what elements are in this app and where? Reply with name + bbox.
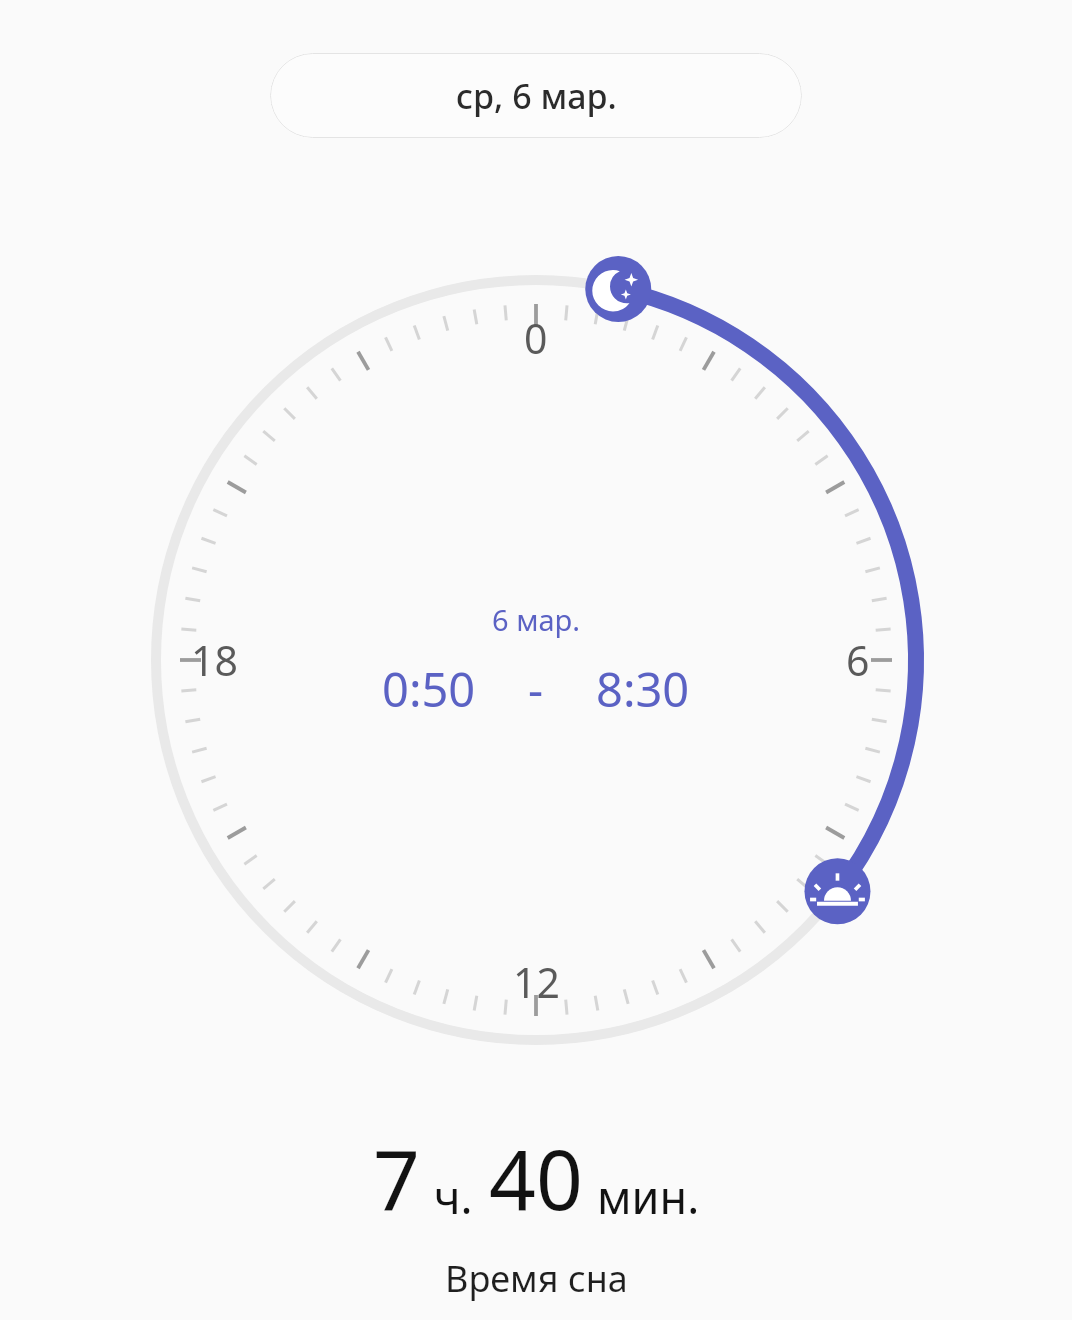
staticText: 0 — [524, 310, 548, 366]
button[interactable]: Время отхода ко сну — [585, 257, 651, 323]
button[interactable]: ср, 6 мар. — [270, 53, 802, 138]
staticText: 7 — [373, 1122, 420, 1234]
button[interactable]: Время пробуждения — [804, 858, 870, 924]
staticText: 6 — [846, 632, 870, 688]
staticText: 0:50 — [382, 657, 476, 721]
staticText: мин. — [597, 1166, 700, 1227]
staticText: - — [528, 657, 544, 721]
staticText: 12 — [513, 954, 560, 1010]
staticText: 6 мар. — [492, 600, 580, 639]
staticText: ч. — [434, 1166, 473, 1227]
staticText: 8:30 — [596, 657, 690, 721]
staticText: Время сна — [445, 1254, 628, 1303]
staticText: 40 — [489, 1122, 583, 1234]
staticText: 18 — [191, 632, 238, 688]
staticText: ср, 6 мар. — [456, 73, 617, 119]
